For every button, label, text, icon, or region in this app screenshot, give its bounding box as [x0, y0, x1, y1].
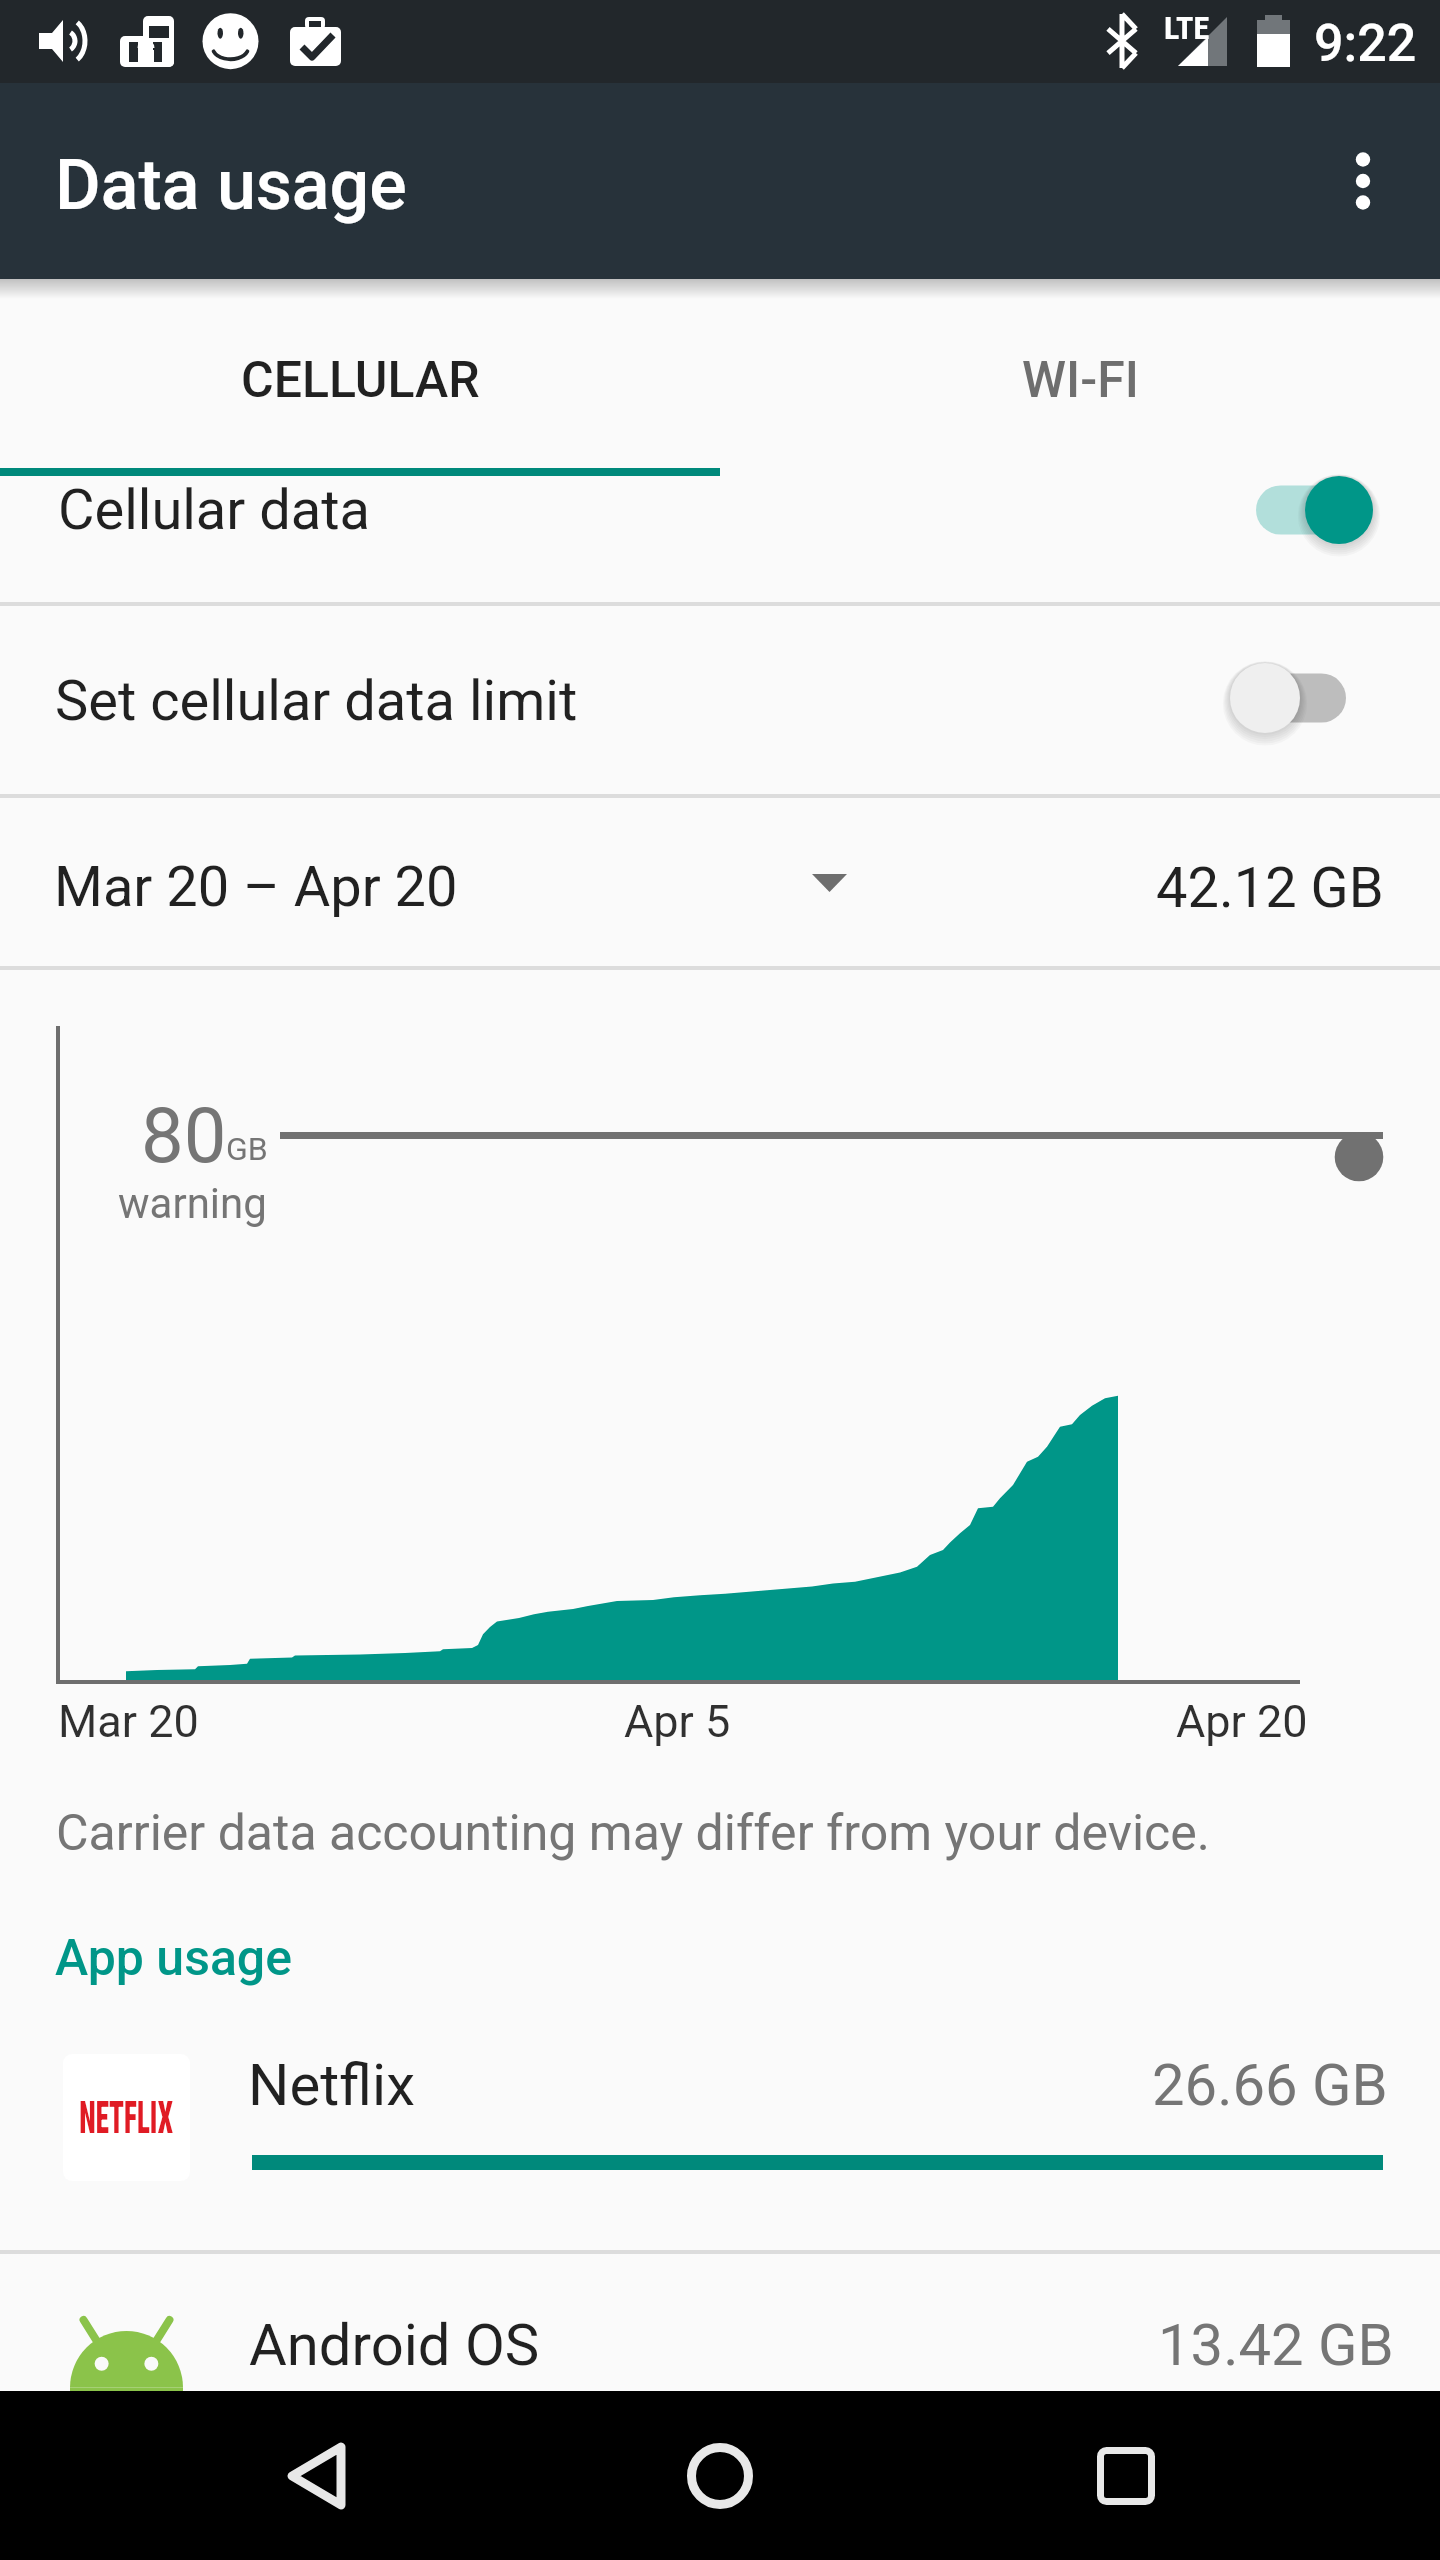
staticText: 9:22: [1314, 13, 1417, 74]
staticText: Android OS: [249, 2311, 540, 2379]
button[interactable]: Back: [196, 2391, 436, 2560]
staticText: Cellular data: [58, 477, 371, 543]
staticText: Data usage: [55, 144, 407, 226]
staticText: Carrier data accounting may differ from …: [56, 1804, 1210, 1863]
button[interactable]: Set cellular data limit: [0, 606, 1440, 794]
button[interactable]: WI-FI: [720, 279, 1440, 468]
staticText: Set cellular data limit: [55, 668, 578, 734]
staticText: 13.42 GB: [1158, 2311, 1394, 2379]
staticText: LTE: [1164, 9, 1210, 47]
button[interactable]: Mar 20 – Apr 20: [0, 798, 1440, 966]
staticText: Mar 20 – Apr 20: [54, 854, 458, 920]
button[interactable]: Cellular data: [0, 476, 1440, 602]
staticText: 42.12 GB: [1156, 855, 1384, 921]
button[interactable]: Home: [600, 2391, 840, 2560]
staticText: App usage: [55, 1929, 292, 1988]
button[interactable]: More options: [1291, 83, 1435, 279]
staticText: GB: [226, 1130, 268, 1168]
button[interactable]: CELLULAR: [0, 279, 720, 468]
staticText: Apr 20: [1176, 1695, 1308, 1748]
staticText: CELLULAR: [241, 351, 480, 410]
staticText: Netflix: [248, 2051, 415, 2119]
staticText: Apr 5: [624, 1695, 731, 1748]
staticText: WI-FI: [1022, 351, 1139, 410]
staticText: warning: [118, 1179, 267, 1228]
staticText: Mar 20: [58, 1695, 199, 1748]
staticText: 26.66 GB: [1152, 2051, 1388, 2119]
staticText: 80: [141, 1091, 227, 1180]
button[interactable]: Recent apps: [1006, 2391, 1246, 2560]
staticText: NETFLIX: [79, 2092, 174, 2143]
button[interactable]: Android OS: [0, 2254, 1440, 2391]
button[interactable]: NETFLIX: [0, 2032, 1440, 2250]
